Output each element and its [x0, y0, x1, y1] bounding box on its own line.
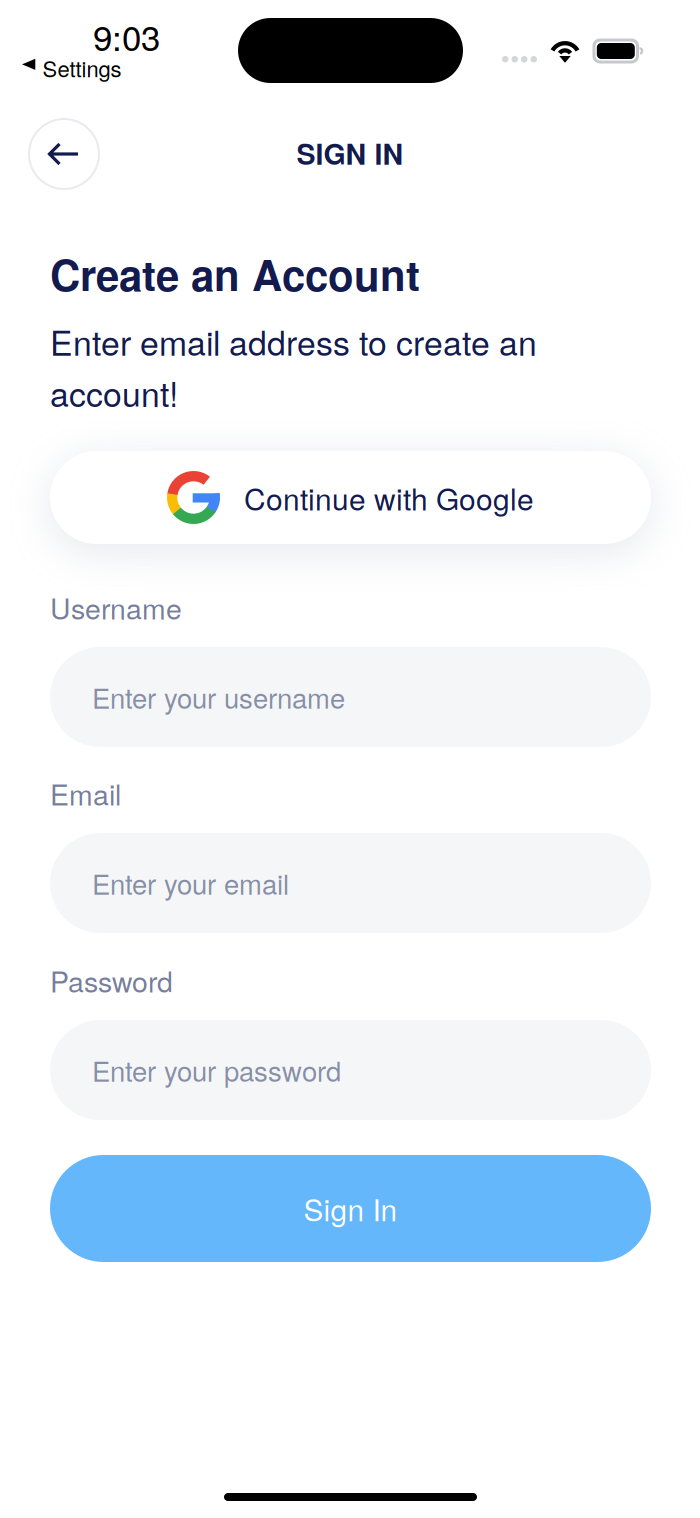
button[interactable]: Enter your email [50, 833, 651, 933]
staticText: Enter your username [92, 677, 345, 717]
staticText: Password [50, 960, 173, 1001]
staticText: SIGN IN [296, 133, 403, 173]
staticText: Enter your password [92, 1050, 341, 1090]
staticText: Create an Account [50, 244, 420, 304]
staticText: Continue with Google [244, 476, 534, 519]
staticText: Sign In [303, 1187, 397, 1230]
staticText: Username [50, 587, 182, 628]
button[interactable]: Enter your password [50, 1020, 651, 1120]
button[interactable]: Back [29, 119, 99, 189]
staticText: Enter email address to create an account… [50, 317, 537, 417]
staticText: 9:03 [93, 11, 160, 61]
staticText: Settings [42, 52, 121, 83]
staticText: Email [50, 773, 121, 814]
button[interactable]: Enter your username [50, 647, 651, 747]
button[interactable]: Continue with Google [50, 451, 651, 544]
button[interactable]: Sign In [50, 1155, 651, 1262]
staticText: Enter your email [92, 863, 289, 903]
